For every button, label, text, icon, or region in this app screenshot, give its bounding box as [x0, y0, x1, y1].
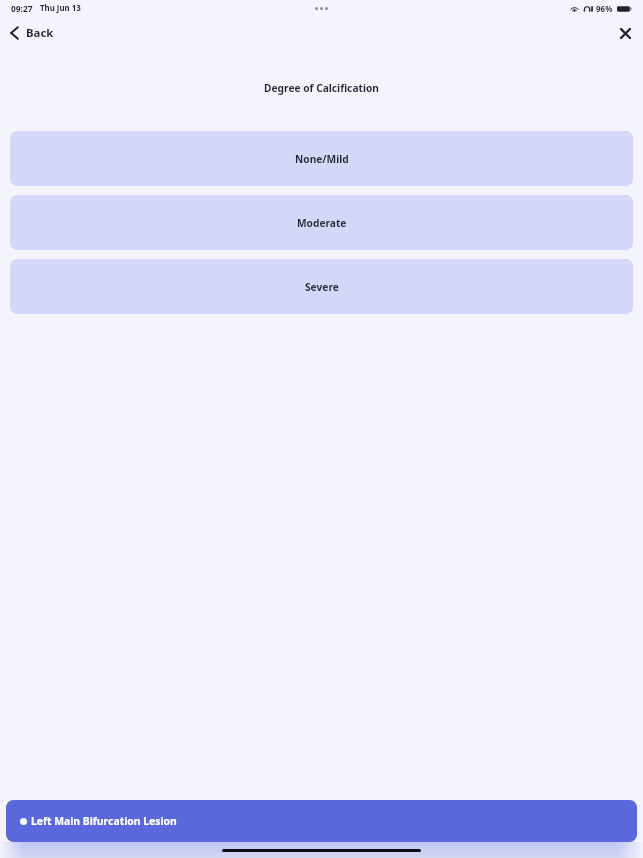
button[interactable]: None/Mild: [10, 131, 633, 186]
staticText: 96%: [596, 3, 613, 14]
button[interactable]: Moderate: [10, 195, 633, 250]
staticText: None/Mild: [295, 152, 349, 166]
staticText: Back: [26, 25, 54, 41]
staticText: Severe: [305, 280, 339, 294]
button[interactable]: Back: [0, 21, 62, 45]
staticText: Moderate: [297, 216, 347, 230]
staticText: Degree of Calcification: [0, 81, 643, 95]
button[interactable]: Severe: [10, 259, 633, 314]
staticText: Thu Jun 13: [40, 3, 81, 14]
staticText: Left Main Bifurcation Lesion: [31, 814, 177, 828]
button[interactable]: Close: [613, 21, 637, 45]
staticText: 09:27: [11, 3, 33, 14]
button[interactable]: Left Main Bifurcation Lesion: [6, 800, 637, 842]
